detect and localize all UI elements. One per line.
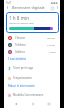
- button[interactable]: Temporizzatore: [4, 73, 60, 83]
- staticText: 9:41: [6, 1, 12, 5]
- button[interactable]: More options: [55, 5, 60, 10]
- staticText: 1 h 8 min: [9, 15, 29, 21]
- button[interactable]: Telefono: [4, 41, 60, 48]
- staticText: Timer per le app: [13, 66, 34, 70]
- staticText: I tuoi obiettivi: [8, 57, 27, 61]
- button[interactable]: Recents: [44, 99, 53, 108]
- staticText: Riduci le interruzioni: [8, 84, 35, 88]
- staticText: Modalita Concentrazione: [13, 93, 44, 97]
- staticText: Chrome: [15, 36, 26, 40]
- staticText: Benessere digitale: [12, 5, 45, 10]
- button[interactable]: Modalita Concentrazione: [4, 90, 60, 100]
- staticText: Galleria: [15, 50, 25, 54]
- button[interactable]: Home: [28, 99, 37, 108]
- staticText: Telefono: [15, 43, 26, 47]
- button[interactable]: Back: [4, 4, 11, 11]
- staticText: 12 min: [47, 43, 56, 46]
- button[interactable]: Back: [11, 99, 20, 108]
- staticText: 46 min: [47, 36, 56, 39]
- button[interactable]: Chrome: [4, 34, 60, 41]
- button[interactable]: Help: [49, 5, 55, 11]
- staticText: Temporizzatore: [13, 76, 32, 80]
- button[interactable]: 1 h 8 min: [6, 12, 59, 33]
- staticText: Tempo di utilizzo oggi: [9, 21, 34, 24]
- staticText: 5 min: [49, 50, 56, 53]
- button[interactable]: Timer per le app: [4, 63, 60, 73]
- button[interactable]: Galleria: [4, 48, 60, 55]
